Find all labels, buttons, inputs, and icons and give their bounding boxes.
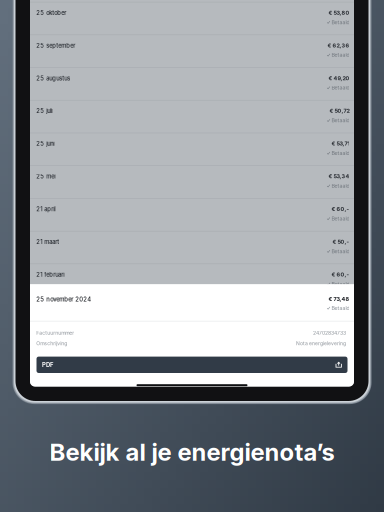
staticText: Betaald <box>331 19 349 25</box>
staticText: 24702834733 <box>313 330 346 336</box>
staticText: 25 augustus <box>36 75 70 82</box>
staticText: € 73,48 <box>328 296 349 302</box>
staticText: 25 september <box>36 42 75 49</box>
button[interactable]: 25 augustus <box>30 67 354 100</box>
staticText: 25 november 2024 <box>36 296 91 303</box>
staticText: Betaald <box>331 117 349 124</box>
staticText: PDF <box>42 361 53 368</box>
staticText: € 50,- <box>332 238 349 245</box>
staticText: 21 maart <box>36 238 59 245</box>
staticText: 25 juni <box>36 140 54 147</box>
staticText: Betaald <box>331 248 349 254</box>
staticText: 25 juli <box>36 108 52 114</box>
staticText: € 53,71 <box>331 140 349 147</box>
staticText: € 62,36 <box>327 42 349 49</box>
staticText: 21 april <box>36 206 55 213</box>
staticText: Betaald <box>331 305 349 311</box>
button[interactable]: 25 juli <box>30 100 354 133</box>
staticText: Betaald <box>331 85 349 91</box>
staticText: Nota energielevering <box>296 340 346 346</box>
staticText: € 49,20 <box>328 75 349 81</box>
button[interactable]: 25 juni <box>30 133 354 165</box>
button[interactable]: 21 april <box>30 198 354 231</box>
staticText: Betaald <box>331 52 349 58</box>
staticText: Betaald <box>331 183 349 189</box>
staticText: Betaald <box>331 215 349 222</box>
staticText: Factuurnummer <box>36 330 74 336</box>
staticText: Betaald <box>331 281 349 287</box>
button[interactable]: 25 mei <box>30 165 354 198</box>
button[interactable]: PDF <box>36 357 347 373</box>
staticText: Betaald <box>331 150 349 156</box>
staticText: 25 mei <box>36 173 55 180</box>
staticText: € 53,80 <box>328 9 349 16</box>
staticText: Omschrijving <box>36 340 67 346</box>
staticText: € 53,34 <box>328 173 349 180</box>
staticText: Bekijk al je energienota’s <box>49 437 334 466</box>
staticText: 21 februari <box>36 271 64 278</box>
staticText: € 60,- <box>331 271 349 278</box>
button[interactable]: 21 februari <box>30 264 354 296</box>
staticText: € 60,- <box>331 206 349 212</box>
staticText: 25 oktober <box>36 9 66 16</box>
staticText: € 50,72 <box>329 108 349 114</box>
button[interactable]: 25 september <box>30 34 354 67</box>
button[interactable]: 21 maart <box>30 231 354 263</box>
button[interactable]: 25 oktober <box>30 2 354 34</box>
